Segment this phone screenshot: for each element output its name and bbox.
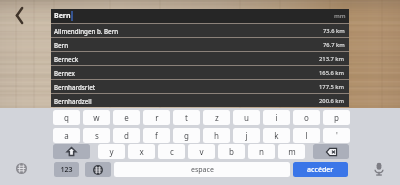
button[interactable]: Bernhardsriet bbox=[51, 79, 349, 93]
button[interactable]: Shift bbox=[53, 144, 90, 159]
staticText: r bbox=[155, 112, 159, 123]
button[interactable]: r bbox=[143, 110, 170, 125]
staticText: Berneck bbox=[54, 55, 79, 63]
button[interactable]: m bbox=[278, 144, 305, 159]
button[interactable]: s bbox=[83, 128, 110, 143]
staticText: w bbox=[93, 112, 100, 123]
staticText: u bbox=[244, 112, 249, 123]
button[interactable]: Bernex bbox=[51, 65, 349, 79]
staticText: n bbox=[259, 146, 264, 157]
staticText: Bern bbox=[54, 11, 71, 21]
staticText: Bernhardzell bbox=[54, 97, 92, 105]
button[interactable]: w bbox=[83, 110, 110, 125]
button[interactable]: d bbox=[113, 128, 140, 143]
staticText: ' bbox=[336, 130, 338, 141]
staticText: q bbox=[64, 112, 69, 123]
button[interactable]: b bbox=[218, 144, 245, 159]
staticText: h bbox=[214, 130, 219, 141]
button[interactable]: accéder bbox=[293, 162, 348, 177]
staticText: 213.7 km bbox=[319, 55, 345, 63]
staticText: Bernex bbox=[54, 69, 75, 77]
button[interactable]: Change keyboard bbox=[16, 163, 27, 174]
button[interactable]: p bbox=[323, 110, 350, 125]
staticText: c bbox=[170, 146, 174, 157]
staticText: j bbox=[245, 130, 248, 141]
staticText: Allmendingen b. Bern bbox=[54, 27, 119, 35]
button[interactable]: q bbox=[53, 110, 80, 125]
staticText: 200.6 km bbox=[319, 97, 345, 105]
staticText: Bern bbox=[54, 41, 69, 49]
staticText: k bbox=[274, 130, 279, 141]
button[interactable]: h bbox=[203, 128, 230, 143]
button[interactable]: Bern bbox=[51, 9, 349, 23]
button[interactable]: Bern bbox=[51, 37, 349, 51]
staticText: e bbox=[124, 112, 129, 123]
staticText: y bbox=[109, 146, 114, 157]
button[interactable]: espace bbox=[114, 162, 290, 177]
button[interactable]: l bbox=[293, 128, 320, 143]
button[interactable]: a bbox=[53, 128, 80, 143]
button[interactable]: v bbox=[188, 144, 215, 159]
button[interactable]: e bbox=[113, 110, 140, 125]
staticText: Bernhardsriet bbox=[54, 83, 96, 91]
staticText: g bbox=[184, 130, 189, 141]
staticText: z bbox=[215, 112, 219, 123]
staticText: d bbox=[124, 130, 129, 141]
button[interactable]: n bbox=[248, 144, 275, 159]
button[interactable]: j bbox=[233, 128, 260, 143]
button[interactable]: g bbox=[173, 128, 200, 143]
staticText: m bbox=[288, 146, 296, 157]
staticText: 73.6 km bbox=[323, 27, 345, 35]
staticText: l bbox=[305, 130, 308, 141]
button[interactable]: k bbox=[263, 128, 290, 143]
staticText: accéder bbox=[307, 165, 334, 175]
button[interactable]: f bbox=[143, 128, 170, 143]
button[interactable]: Berneck bbox=[51, 51, 349, 65]
staticText: o bbox=[304, 112, 309, 123]
button[interactable]: Backspace bbox=[313, 144, 349, 159]
staticText: 76.7 km bbox=[323, 41, 345, 49]
staticText: 177.5 km bbox=[319, 83, 345, 91]
staticText: f bbox=[155, 130, 158, 141]
staticText: i bbox=[275, 112, 278, 123]
button[interactable]: u bbox=[233, 110, 260, 125]
staticText: x bbox=[139, 146, 144, 157]
button[interactable]: x bbox=[128, 144, 155, 159]
button[interactable]: 123 bbox=[54, 162, 79, 177]
staticText: t bbox=[185, 112, 188, 123]
button[interactable]: Bernhardzell bbox=[51, 93, 349, 107]
button[interactable]: Dictate bbox=[372, 162, 386, 176]
button[interactable]: o bbox=[293, 110, 320, 125]
staticText: b bbox=[229, 146, 234, 157]
staticText: s bbox=[95, 130, 99, 141]
staticText: espace bbox=[191, 165, 214, 175]
button[interactable]: i bbox=[263, 110, 290, 125]
button[interactable]: t bbox=[173, 110, 200, 125]
button[interactable]: ' bbox=[323, 128, 350, 143]
button[interactable]: Allmendingen b. Bern bbox=[51, 23, 349, 37]
staticText: a bbox=[64, 130, 69, 141]
button[interactable]: Back bbox=[5, 2, 31, 28]
staticText: mm bbox=[334, 12, 346, 20]
button[interactable]: c bbox=[158, 144, 185, 159]
staticText: p bbox=[334, 112, 339, 123]
staticText: v bbox=[199, 146, 204, 157]
staticText: 123 bbox=[60, 165, 73, 175]
staticText: 165.6 km bbox=[319, 69, 345, 77]
button[interactable]: Emoji bbox=[85, 162, 111, 177]
button[interactable]: y bbox=[98, 144, 125, 159]
button[interactable]: z bbox=[203, 110, 230, 125]
